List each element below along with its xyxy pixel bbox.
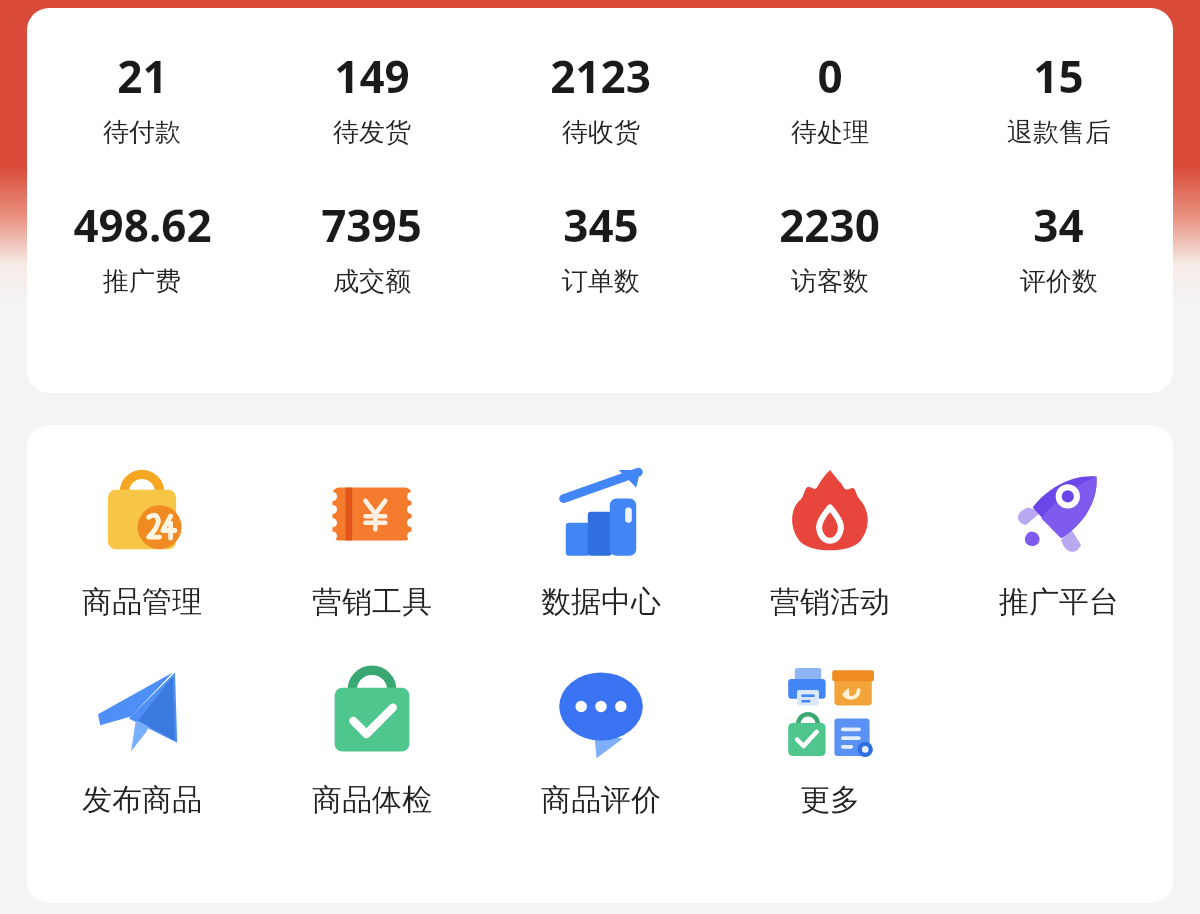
button[interactable]: 0 bbox=[715, 46, 944, 149]
staticText: 发布商品 bbox=[82, 781, 202, 819]
staticText: 成交额 bbox=[333, 265, 411, 298]
staticText: 营销活动 bbox=[770, 583, 890, 621]
button[interactable]: 发布商品 bbox=[27, 657, 257, 819]
staticText: 34 bbox=[1033, 195, 1084, 255]
button[interactable]: 498.62 bbox=[27, 195, 257, 298]
button[interactable]: 营销工具 bbox=[257, 459, 486, 621]
button[interactable]: 推广平台 bbox=[944, 459, 1173, 621]
staticText: 待收货 bbox=[562, 116, 640, 149]
staticText: 待付款 bbox=[103, 116, 181, 149]
staticText: 15 bbox=[1033, 46, 1084, 106]
staticText: 推广费 bbox=[103, 265, 181, 298]
staticText: 商品评价 bbox=[541, 781, 661, 819]
staticText: 数据中心 bbox=[541, 583, 661, 621]
button[interactable]: 15 bbox=[944, 46, 1173, 149]
staticText: 访客数 bbox=[791, 265, 869, 298]
staticText: 7395 bbox=[321, 195, 422, 255]
button[interactable]: 7395 bbox=[257, 195, 486, 298]
button[interactable]: 2123 bbox=[486, 46, 715, 149]
staticText: 更多 bbox=[800, 781, 860, 819]
staticText: 商品体检 bbox=[312, 781, 432, 819]
staticText: 待处理 bbox=[791, 116, 869, 149]
staticText: 498.62 bbox=[73, 195, 212, 255]
button[interactable]: 更多 bbox=[715, 657, 944, 819]
staticText: 149 bbox=[334, 46, 410, 106]
staticText: 21 bbox=[117, 46, 168, 106]
button[interactable]: 345 bbox=[486, 195, 715, 298]
button[interactable]: 商品评价 bbox=[486, 657, 715, 819]
staticText: 退款售后 bbox=[1007, 116, 1111, 149]
staticText: 推广平台 bbox=[999, 583, 1119, 621]
staticText: 2123 bbox=[550, 46, 651, 106]
button[interactable]: 149 bbox=[257, 46, 486, 149]
staticText: 2230 bbox=[779, 195, 880, 255]
staticText: 0 bbox=[817, 46, 843, 106]
button[interactable]: 营销活动 bbox=[715, 459, 944, 621]
button[interactable]: 2230 bbox=[715, 195, 944, 298]
staticText: 评价数 bbox=[1020, 265, 1098, 298]
staticText: 营销工具 bbox=[312, 583, 432, 621]
button[interactable]: 21 bbox=[27, 46, 257, 149]
button[interactable]: 34 bbox=[944, 195, 1173, 298]
staticText: 商品管理 bbox=[82, 583, 202, 621]
button[interactable]: 商品管理 bbox=[27, 459, 257, 621]
button[interactable]: 数据中心 bbox=[486, 459, 715, 621]
staticText: 订单数 bbox=[562, 265, 640, 298]
staticText: 待发货 bbox=[333, 116, 411, 149]
staticText: 345 bbox=[563, 195, 639, 255]
button[interactable]: 商品体检 bbox=[257, 657, 486, 819]
